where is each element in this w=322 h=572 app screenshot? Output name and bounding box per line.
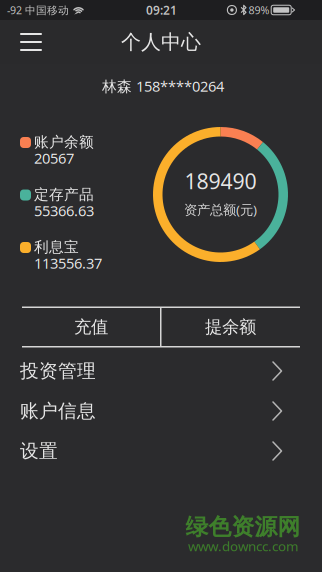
staticText: 绿色资源网 [185,513,300,541]
staticText: 89% [248,3,269,17]
button[interactable]: 提余额 [161,307,299,346]
staticText: 定存产品 [34,185,94,203]
button[interactable]: 投资管理 [0,351,322,391]
staticText: 利息宝 [34,238,79,256]
staticText: 资产总额(元) [184,201,257,218]
staticText: 个人中心 [121,30,201,54]
staticText: 账户信息 [20,399,96,422]
staticText: 113556.37 [34,253,102,273]
staticText: -92 中国移动 [7,3,69,17]
staticText: 投资管理 [20,359,96,382]
staticText: 设置 [20,439,58,462]
button[interactable]: 充值 [22,307,160,346]
button[interactable]: 账户信息 [0,391,322,431]
staticText: 55366.63 [34,201,94,220]
staticText: 林森 158****0264 [102,76,224,96]
button[interactable]: Menu [9,20,53,64]
staticText: 09:21 [146,2,177,18]
staticText: 账户余额 [34,133,94,151]
staticText: 提余额 [205,316,256,338]
staticText: 189490 [184,167,256,195]
staticText: 20567 [34,148,74,168]
button[interactable]: 设置 [0,431,322,471]
staticText: www.downcc.com [188,537,298,555]
staticText: 充值 [74,316,108,338]
